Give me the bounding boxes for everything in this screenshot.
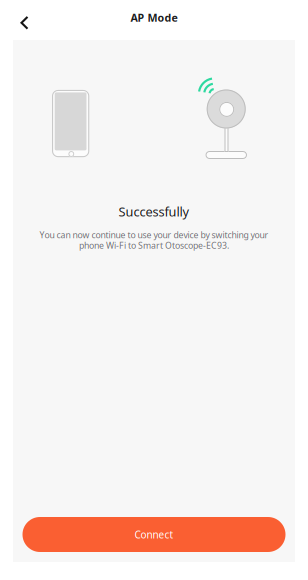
staticText: Connect	[134, 528, 173, 541]
staticText: AP Mode	[130, 10, 177, 25]
button[interactable]: Back	[11, 7, 37, 39]
staticText: Successfully	[118, 203, 189, 220]
button[interactable]: Connect	[22, 517, 285, 552]
staticText: You can now continue to use your device …	[39, 229, 268, 241]
staticText: phone Wi-Fi to Smart Otoscope-EC93.	[79, 240, 229, 251]
